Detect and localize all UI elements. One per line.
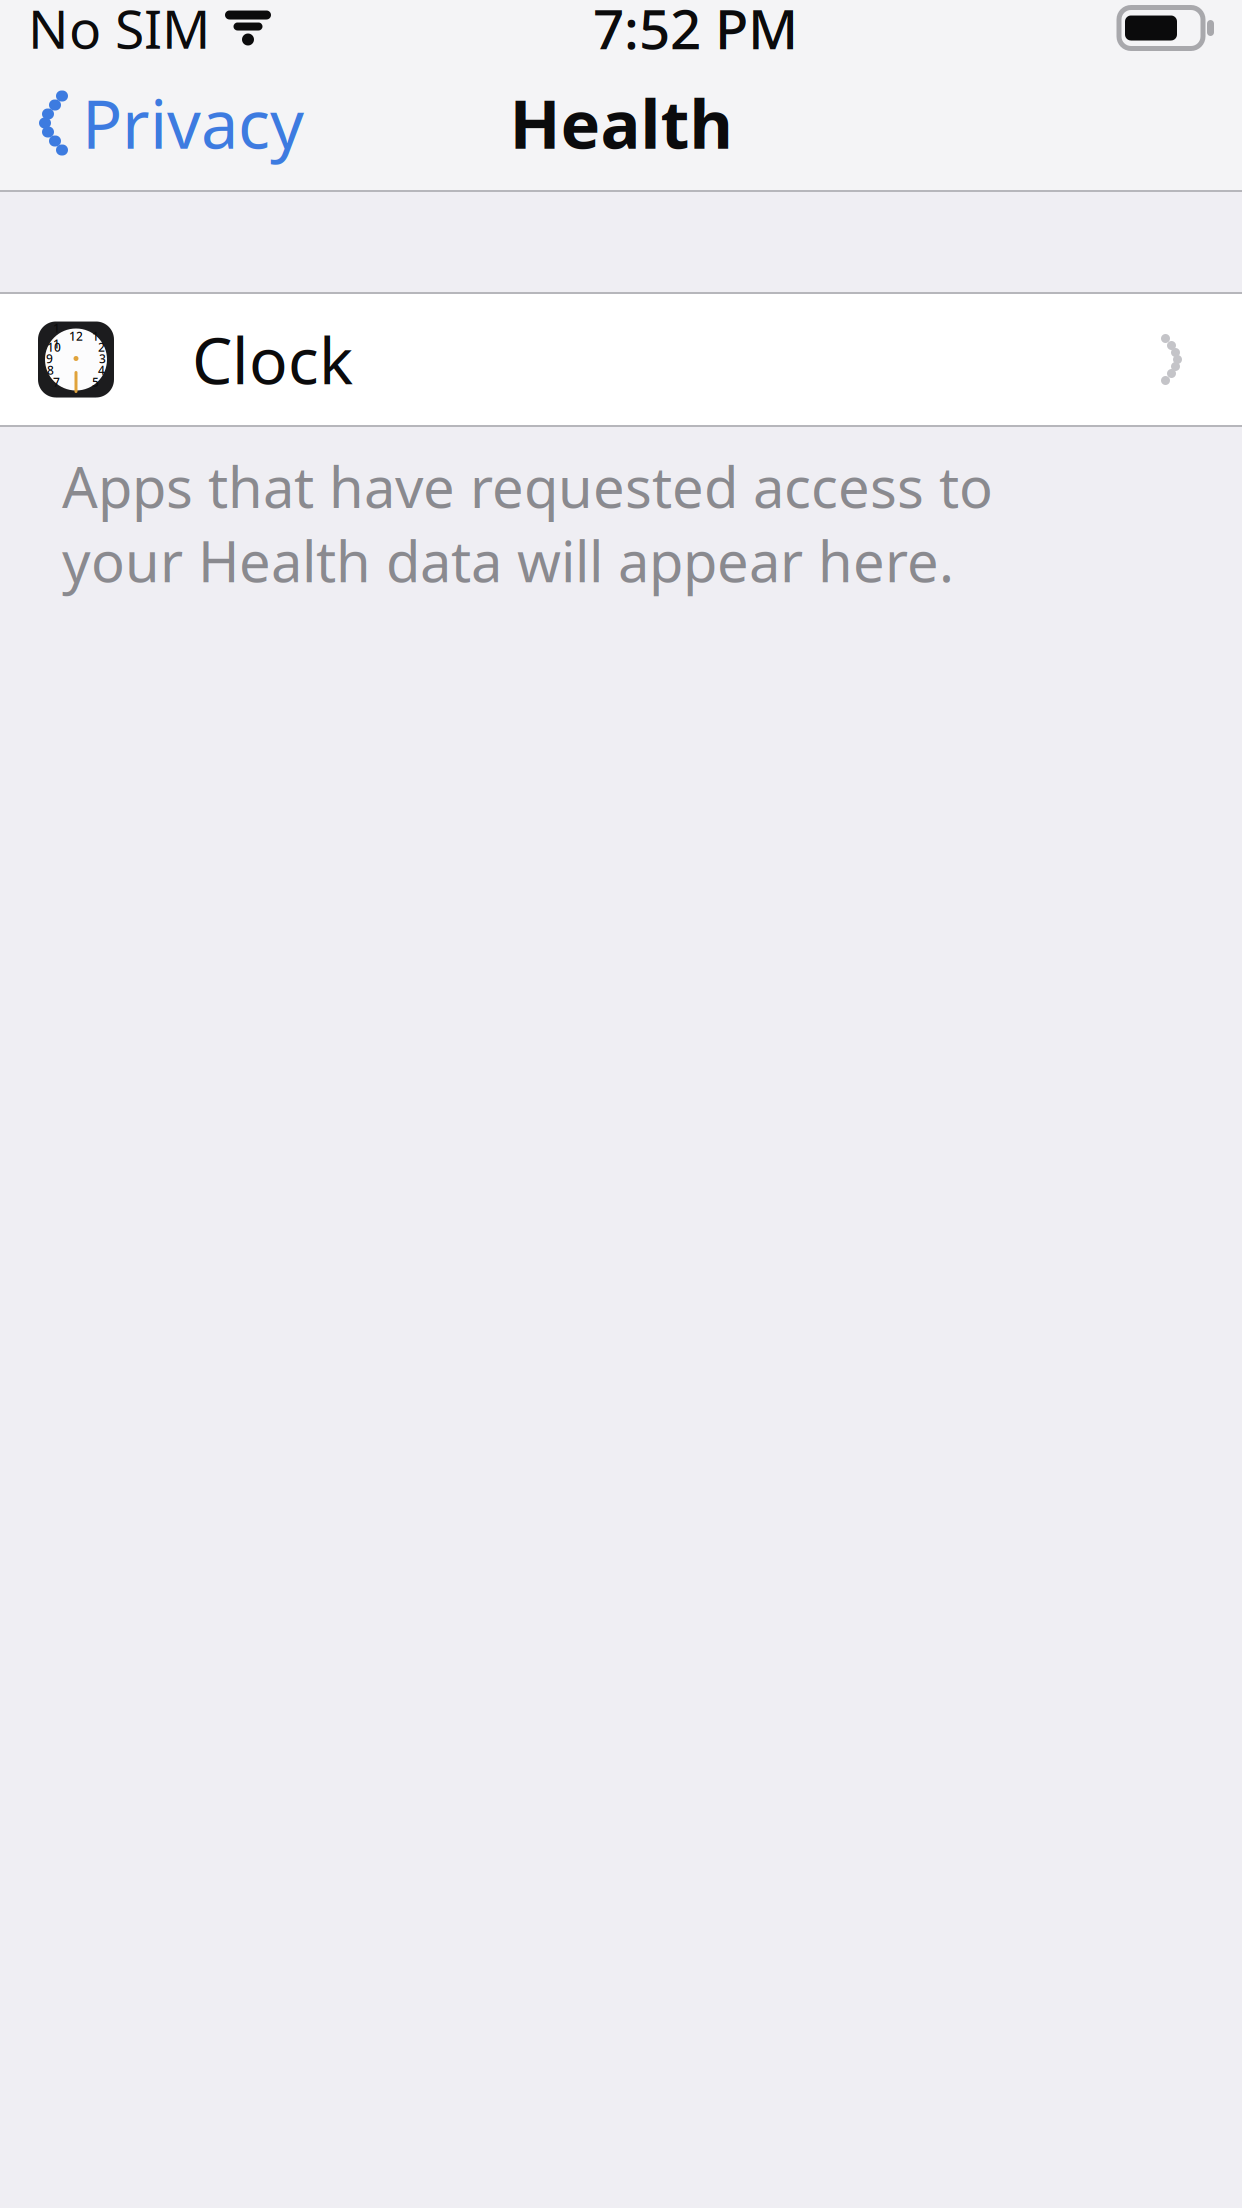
staticText: Clock — [192, 317, 353, 402]
staticText: 11 — [53, 320, 60, 352]
staticText: Health — [509, 79, 732, 167]
staticText: 2 — [98, 339, 105, 355]
staticText: 7 — [53, 374, 60, 390]
staticText: 1 — [92, 328, 99, 344]
staticText: 8 — [47, 362, 54, 378]
staticText: 12 — [69, 328, 83, 344]
staticText: 10 — [47, 339, 61, 355]
staticText: 9 — [46, 350, 53, 366]
staticText: 7:52 PM — [593, 0, 798, 64]
staticText: No SIM — [28, 0, 210, 63]
staticText: 4 — [98, 362, 105, 378]
staticText: Apps that have requested access to your … — [62, 449, 993, 598]
button[interactable]: 11 — [0, 294, 1242, 425]
staticText: 3 — [99, 350, 106, 366]
staticText: 5 — [92, 374, 99, 390]
button[interactable]: Privacy — [0, 57, 324, 189]
staticText: Privacy — [82, 79, 304, 167]
